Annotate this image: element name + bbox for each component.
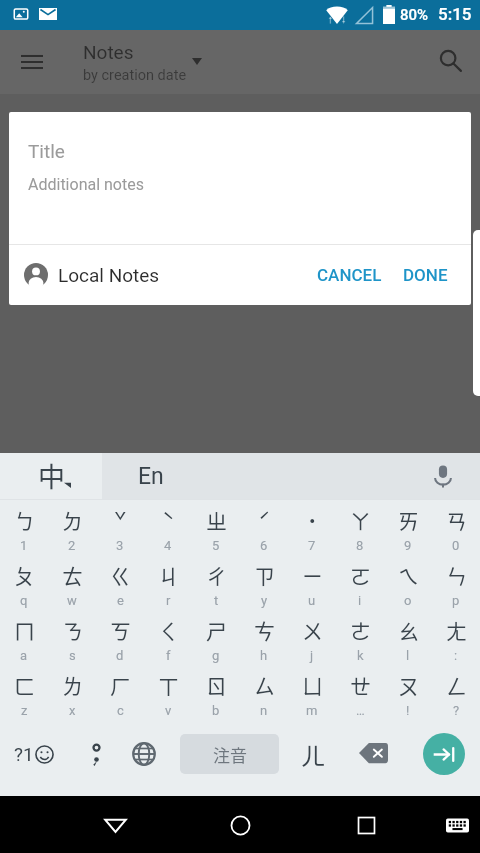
button[interactable]: Open navigation drawer — [9, 39, 55, 85]
button[interactable]: ˙ — [288, 500, 336, 555]
button[interactable]: ㄈ — [0, 665, 48, 720]
button[interactable]: Enter — [423, 733, 465, 775]
staticText: ㄧ — [302, 560, 323, 590]
staticText: s — [69, 648, 76, 663]
staticText: i — [358, 593, 362, 608]
button[interactable]: ㄚ — [336, 500, 384, 555]
staticText: Additional notes — [28, 175, 144, 194]
button[interactable]: ㄜ — [336, 610, 384, 665]
staticText: DONE — [403, 265, 448, 285]
button[interactable]: ˋ — [144, 500, 192, 555]
button[interactable]: ㄥ — [432, 665, 480, 720]
staticText: ㄞ — [398, 505, 419, 535]
button[interactable]: ㄤ — [432, 610, 480, 665]
staticText: ˙ — [307, 505, 318, 535]
staticText: : — [454, 648, 458, 663]
button[interactable]: ㄣ — [432, 555, 480, 610]
staticText: ㄎ — [110, 615, 131, 645]
staticText: ㄙ — [254, 670, 275, 700]
button[interactable]: En — [102, 453, 480, 499]
staticText: ㄓ — [206, 505, 227, 535]
button[interactable]: ㄉ — [48, 500, 96, 555]
button[interactable]: ㄢ — [432, 500, 480, 555]
staticText: 5 — [212, 538, 220, 553]
staticText: ㄍ — [110, 560, 131, 590]
staticText: 3 — [116, 538, 124, 553]
staticText: q — [20, 593, 28, 608]
button[interactable] — [68, 716, 124, 792]
staticText: ? — [453, 703, 460, 718]
button[interactable]: DONE — [395, 255, 456, 295]
staticText: 2 — [68, 538, 76, 553]
staticText: ㄘ — [254, 615, 275, 645]
button[interactable]: ㄘ — [240, 610, 288, 665]
button[interactable]: ㄞ — [384, 500, 432, 555]
button[interactable]: Search — [428, 38, 474, 84]
button[interactable]: ㄙ — [240, 665, 288, 720]
staticText: ! — [406, 703, 410, 718]
button[interactable]: Change keyboard language — [120, 716, 168, 792]
button[interactable]: ㄋ — [48, 610, 96, 665]
button[interactable]: Recent apps — [343, 802, 389, 848]
button[interactable]: 中 — [0, 453, 102, 499]
staticText: Notes — [83, 41, 134, 63]
button[interactable]: ㄔ — [192, 555, 240, 610]
button[interactable]: CANCEL — [309, 255, 390, 295]
staticText: ㄟ — [398, 560, 419, 590]
button[interactable]: ㄖ — [192, 665, 240, 720]
staticText: ㄇ — [14, 615, 35, 645]
staticText: Local Notes — [58, 264, 160, 286]
button[interactable]: ㄆ — [0, 555, 48, 610]
button[interactable]: ㄛ — [336, 555, 384, 610]
staticText: ㄅ — [14, 505, 35, 535]
button[interactable]: ㄟ — [384, 555, 432, 610]
staticText: … — [356, 703, 365, 718]
button[interactable]: ㄇ — [0, 610, 48, 665]
staticText: by creation date — [83, 67, 187, 84]
button[interactable]: 注音 — [180, 734, 279, 774]
button[interactable]: ㄦ — [290, 716, 336, 792]
button[interactable]: Backspace — [347, 716, 399, 792]
button[interactable]: ㄗ — [240, 555, 288, 610]
button[interactable]: Switch keyboard — [438, 806, 476, 844]
staticText: ㄆ — [14, 560, 35, 590]
staticText: CANCEL — [317, 265, 382, 285]
button[interactable]: ㄓ — [192, 500, 240, 555]
button[interactable]: ㄐ — [144, 555, 192, 610]
button[interactable]: ㄍ — [96, 555, 144, 610]
button[interactable]: Home — [217, 802, 263, 848]
staticText: ㄜ — [350, 615, 371, 645]
staticText: r — [166, 593, 171, 608]
staticText: ㄏ — [110, 670, 131, 700]
staticText: o — [404, 593, 412, 608]
button[interactable]: ˇ — [96, 500, 144, 555]
staticText: p — [452, 593, 460, 608]
button[interactable]: ㄧ — [288, 555, 336, 610]
button[interactable]: ?1 — [0, 716, 68, 792]
button[interactable]: ˊ — [240, 500, 288, 555]
button[interactable]: ㄝ — [336, 665, 384, 720]
staticText: h — [260, 648, 268, 663]
button[interactable]: Voice input — [427, 460, 459, 492]
staticText: ˋ — [162, 505, 175, 535]
button[interactable]: ㄡ — [384, 665, 432, 720]
button[interactable]: ㄊ — [48, 555, 96, 610]
staticText: y — [261, 593, 268, 608]
staticText: c — [117, 703, 124, 718]
button[interactable]: ㄑ — [144, 610, 192, 665]
button[interactable]: ㄕ — [192, 610, 240, 665]
staticText: ㄢ — [446, 505, 467, 535]
button[interactable]: ㄏ — [96, 665, 144, 720]
staticText: l — [406, 648, 410, 663]
button[interactable]: Change sort order — [184, 48, 210, 74]
button[interactable]: ㄨ — [288, 610, 336, 665]
button[interactable]: ㄅ — [0, 500, 48, 555]
button[interactable]: ㄌ — [48, 665, 96, 720]
button[interactable]: ㄎ — [96, 610, 144, 665]
staticText: ㄑ — [158, 615, 179, 645]
button[interactable]: Back — [92, 802, 138, 848]
button[interactable]: ㄩ — [288, 665, 336, 720]
staticText: ㄣ — [446, 560, 467, 590]
button[interactable]: ㄒ — [144, 665, 192, 720]
button[interactable]: ㄠ — [384, 610, 432, 665]
